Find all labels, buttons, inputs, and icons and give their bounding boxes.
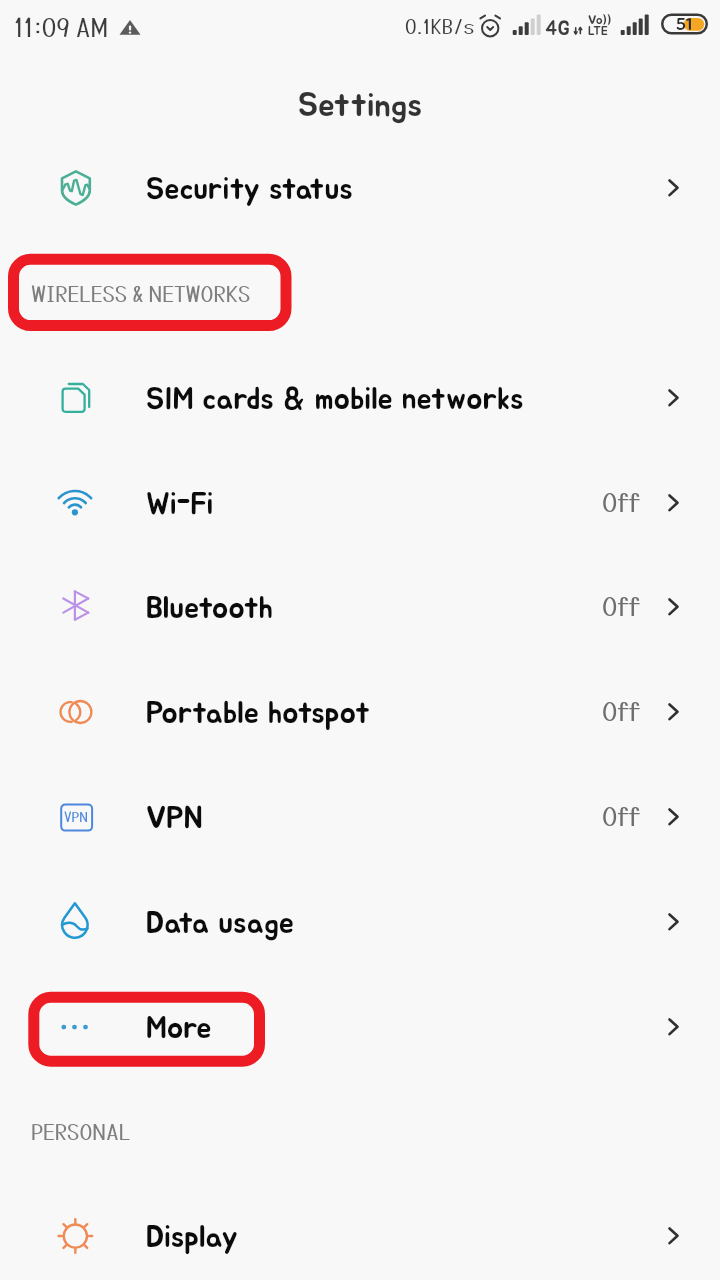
staticText: 0.1KB/s — [405, 15, 475, 38]
staticText: Data usage — [146, 909, 295, 939]
staticText: VPN — [146, 804, 203, 834]
staticText: 11:09 AM — [14, 13, 108, 42]
staticText: Off — [602, 487, 640, 517]
staticText: Off — [602, 801, 640, 831]
staticText: More — [146, 1014, 212, 1044]
staticText: Portable hotspot — [146, 699, 371, 729]
staticText: VPN — [64, 809, 88, 825]
staticText: PERSONAL — [31, 1119, 131, 1144]
button[interactable]: Bluetooth — [0, 554, 720, 659]
staticText: Off — [602, 696, 640, 726]
button[interactable]: Security status — [0, 135, 720, 240]
staticText: LTE — [588, 25, 608, 38]
button[interactable]: Wi-Fi — [0, 450, 720, 555]
button[interactable]: Display — [0, 1183, 720, 1280]
button[interactable]: More — [0, 974, 720, 1079]
staticText: Display — [146, 1223, 238, 1253]
staticText: WIRELESS & NETWORKS — [31, 281, 251, 306]
staticText: SIM cards & mobile networks — [146, 385, 524, 415]
staticText: Wi-Fi — [146, 490, 214, 520]
staticText: Bluetooth — [146, 594, 273, 624]
staticText: Security status — [146, 175, 353, 205]
staticText: 51 — [676, 16, 693, 33]
staticText: Off — [602, 591, 640, 621]
staticText: Vo)) — [588, 14, 612, 27]
button[interactable]: VPN — [0, 764, 720, 869]
button[interactable]: SIM cards & mobile networks — [0, 345, 720, 450]
button[interactable]: Portable hotspot — [0, 659, 720, 764]
button[interactable]: Data usage — [0, 869, 720, 974]
staticText: 4G — [545, 19, 570, 39]
staticText: Settings — [0, 90, 720, 123]
